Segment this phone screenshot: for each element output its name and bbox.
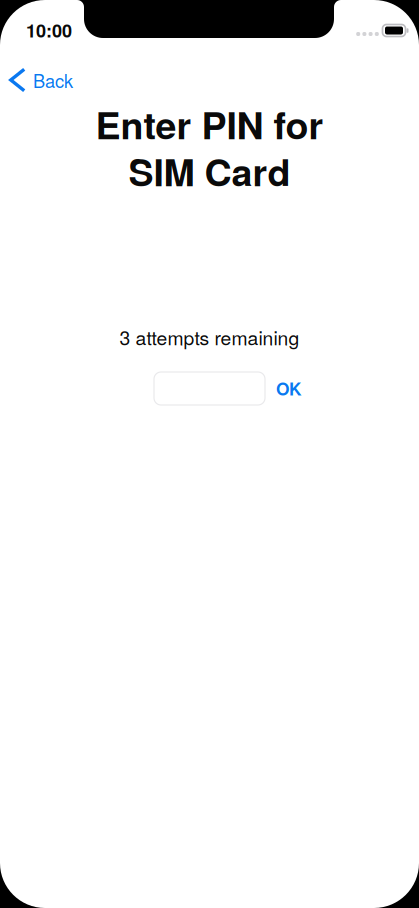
staticText: Back [33,67,73,93]
staticText: 10:00 [26,17,72,43]
staticText: SIM Card [128,144,290,198]
staticText: 3 attempts remaining [119,323,299,351]
staticText: OK [276,376,302,401]
button[interactable]: Back [9,58,121,102]
button[interactable]: OK [276,372,316,405]
staticText: Enter PIN for [95,97,323,151]
